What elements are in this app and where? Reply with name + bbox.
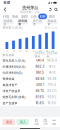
staticText: 600519 · 沪A	[20, 11, 39, 14]
staticText: 扣非净利润(亿)	[2, 71, 22, 75]
staticText: 862.3	[36, 65, 45, 68]
staticText: 资金	[12, 14, 18, 19]
button[interactable]: Search	[54, 8, 58, 11]
staticText: 2023年报	[47, 51, 58, 59]
staticText: 资产负债	[33, 19, 42, 26]
staticText: 公告	[30, 14, 36, 19]
staticText: 贵州茅台	[22, 5, 38, 10]
staticText: 每股收益	[2, 77, 14, 81]
button[interactable]: 买入	[16, 119, 29, 125]
button[interactable]: 更多	[50, 119, 58, 125]
staticText: 20	[25, 50, 28, 52]
button[interactable]: 财务摘要	[17, 21, 28, 24]
staticText: 68.64	[36, 77, 45, 81]
staticText: 59.49	[48, 77, 57, 81]
button[interactable]: 资金	[10, 13, 20, 19]
staticText: 175.4	[48, 83, 56, 87]
staticText: 营业总收入(亿元)	[2, 59, 25, 62]
button[interactable]: 卖出	[2, 119, 15, 125]
staticText: 新闻	[21, 14, 27, 19]
staticText: 18.9%	[48, 101, 57, 105]
button[interactable]: 分享	[42, 119, 49, 125]
staticText: 9:41	[3, 0, 10, 5]
staticText: 34.2%	[47, 89, 57, 93]
button[interactable]: 新闻	[20, 13, 29, 19]
staticText: 更多	[52, 122, 56, 125]
button[interactable]: Refresh	[48, 8, 52, 11]
staticText: 行情	[3, 14, 9, 19]
staticText: 24	[52, 50, 55, 52]
staticText: 36.1%	[36, 89, 45, 93]
staticText: 22	[39, 50, 41, 52]
staticText: 销售毛利率(含税)	[2, 95, 25, 99]
staticText: 21	[32, 50, 34, 52]
button[interactable]: 财务	[38, 13, 47, 19]
staticText: 资产负债率	[2, 101, 17, 105]
staticText: 财务	[40, 14, 46, 19]
staticText: 卖出	[6, 120, 12, 124]
button[interactable]: 行情	[1, 13, 10, 19]
staticText: 91.9%	[48, 95, 57, 99]
button[interactable]: 股东	[47, 13, 56, 19]
staticText: 财务摘要	[18, 19, 27, 26]
staticText: 17	[6, 50, 8, 52]
staticText: 财务指标	[2, 53, 14, 57]
staticText: 归属净利润(亿元)	[2, 65, 25, 69]
staticText: 净资产收益率	[2, 89, 20, 93]
staticText: 1741.4	[36, 59, 44, 62]
staticText: 每股净资产	[2, 83, 17, 87]
staticText: 单位:亿元	[45, 26, 58, 29]
button[interactable]: 业绩报表	[2, 21, 13, 24]
staticText: 861.5	[36, 71, 44, 74]
staticText: 2024三季报	[35, 51, 46, 59]
staticText: 分享	[43, 122, 47, 125]
button[interactable]: 公告	[29, 13, 38, 19]
staticText: 买入	[20, 120, 26, 124]
staticText: 现金流量	[48, 19, 57, 26]
staticText: 16.8%	[36, 101, 45, 105]
button[interactable]: 现金流量	[47, 21, 58, 24]
staticText: 747.3	[49, 65, 56, 68]
staticText: 747.0	[49, 71, 56, 74]
staticText: 200.1	[36, 83, 44, 87]
staticText: 股东	[49, 14, 55, 19]
staticText: 业绩报表	[3, 19, 12, 26]
staticText: 91.9%	[36, 95, 45, 99]
staticText: 18	[12, 50, 14, 52]
button[interactable]: 自选	[33, 119, 40, 125]
staticText: 19	[19, 50, 21, 52]
button[interactable]: Back	[2, 6, 8, 13]
button[interactable]: 资产负债	[32, 21, 43, 24]
staticText: 自选	[34, 122, 38, 125]
staticText: 1476.9	[47, 59, 57, 62]
staticText: 营业收入(亿元)	[2, 26, 22, 29]
staticText: 23	[45, 50, 47, 52]
